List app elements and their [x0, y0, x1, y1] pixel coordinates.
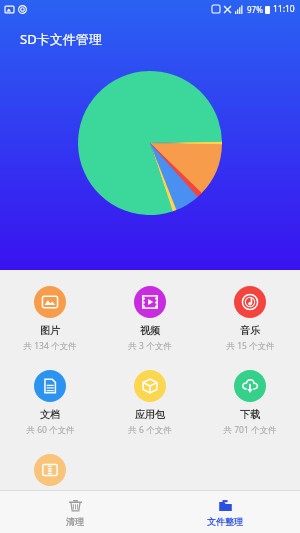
staticText: 共 6 个文件	[128, 424, 172, 436]
staticText: 共 60 个文件	[26, 424, 75, 436]
button[interactable]: 文档	[0, 366, 100, 440]
staticText: 视频	[140, 324, 160, 337]
staticText: 共 134 个文件	[23, 340, 77, 352]
staticText: 文件整理	[207, 516, 243, 527]
staticText: 共 15 个文件	[226, 340, 275, 352]
button[interactable]: 文件整理	[150, 498, 300, 527]
staticText: 文档	[40, 408, 60, 421]
button[interactable]: 清理	[0, 498, 150, 527]
staticText: 共 3 个文件	[128, 340, 172, 352]
staticText: 97%	[247, 4, 263, 15]
button[interactable]: 音乐	[200, 282, 300, 356]
staticText: 音乐	[240, 324, 260, 337]
button[interactable]: 应用包	[100, 366, 200, 440]
button[interactable]: 压缩包	[0, 450, 100, 490]
staticText: 清理	[66, 516, 84, 527]
staticText: 应用包	[135, 408, 165, 421]
staticText: SD卡文件管理	[20, 30, 102, 48]
staticText: 下载	[240, 408, 260, 421]
button[interactable]: 下载	[200, 366, 300, 440]
staticText: 共 701 个文件	[223, 424, 277, 436]
button[interactable]: 视频	[100, 282, 200, 356]
button[interactable]: 图片	[0, 282, 100, 356]
staticText: 11:10	[273, 3, 295, 15]
staticText: 图片	[40, 324, 60, 337]
